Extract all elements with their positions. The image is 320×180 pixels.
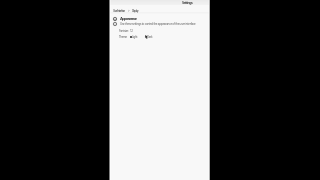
- other: Pointer: [145, 35, 148, 39]
- staticText: Dark: [147, 35, 153, 39]
- button[interactable]: Light: [130, 35, 138, 39]
- staticText: >: [128, 9, 130, 13]
- staticText: Light: [132, 35, 138, 39]
- staticText: Display: [132, 9, 139, 13]
- button[interactable]: User Interface: [113, 9, 139, 13]
- staticText: Settings: [182, 0, 193, 5]
- staticText: 12: [130, 29, 133, 33]
- staticText: Use these settings to control the appear…: [120, 22, 196, 26]
- staticText: Font size:: [119, 29, 129, 33]
- button[interactable]: Dark: [145, 35, 153, 39]
- staticText: Appearance: [120, 16, 137, 22]
- staticText: Theme:: [119, 35, 128, 39]
- staticText: User Interface: [113, 9, 125, 13]
